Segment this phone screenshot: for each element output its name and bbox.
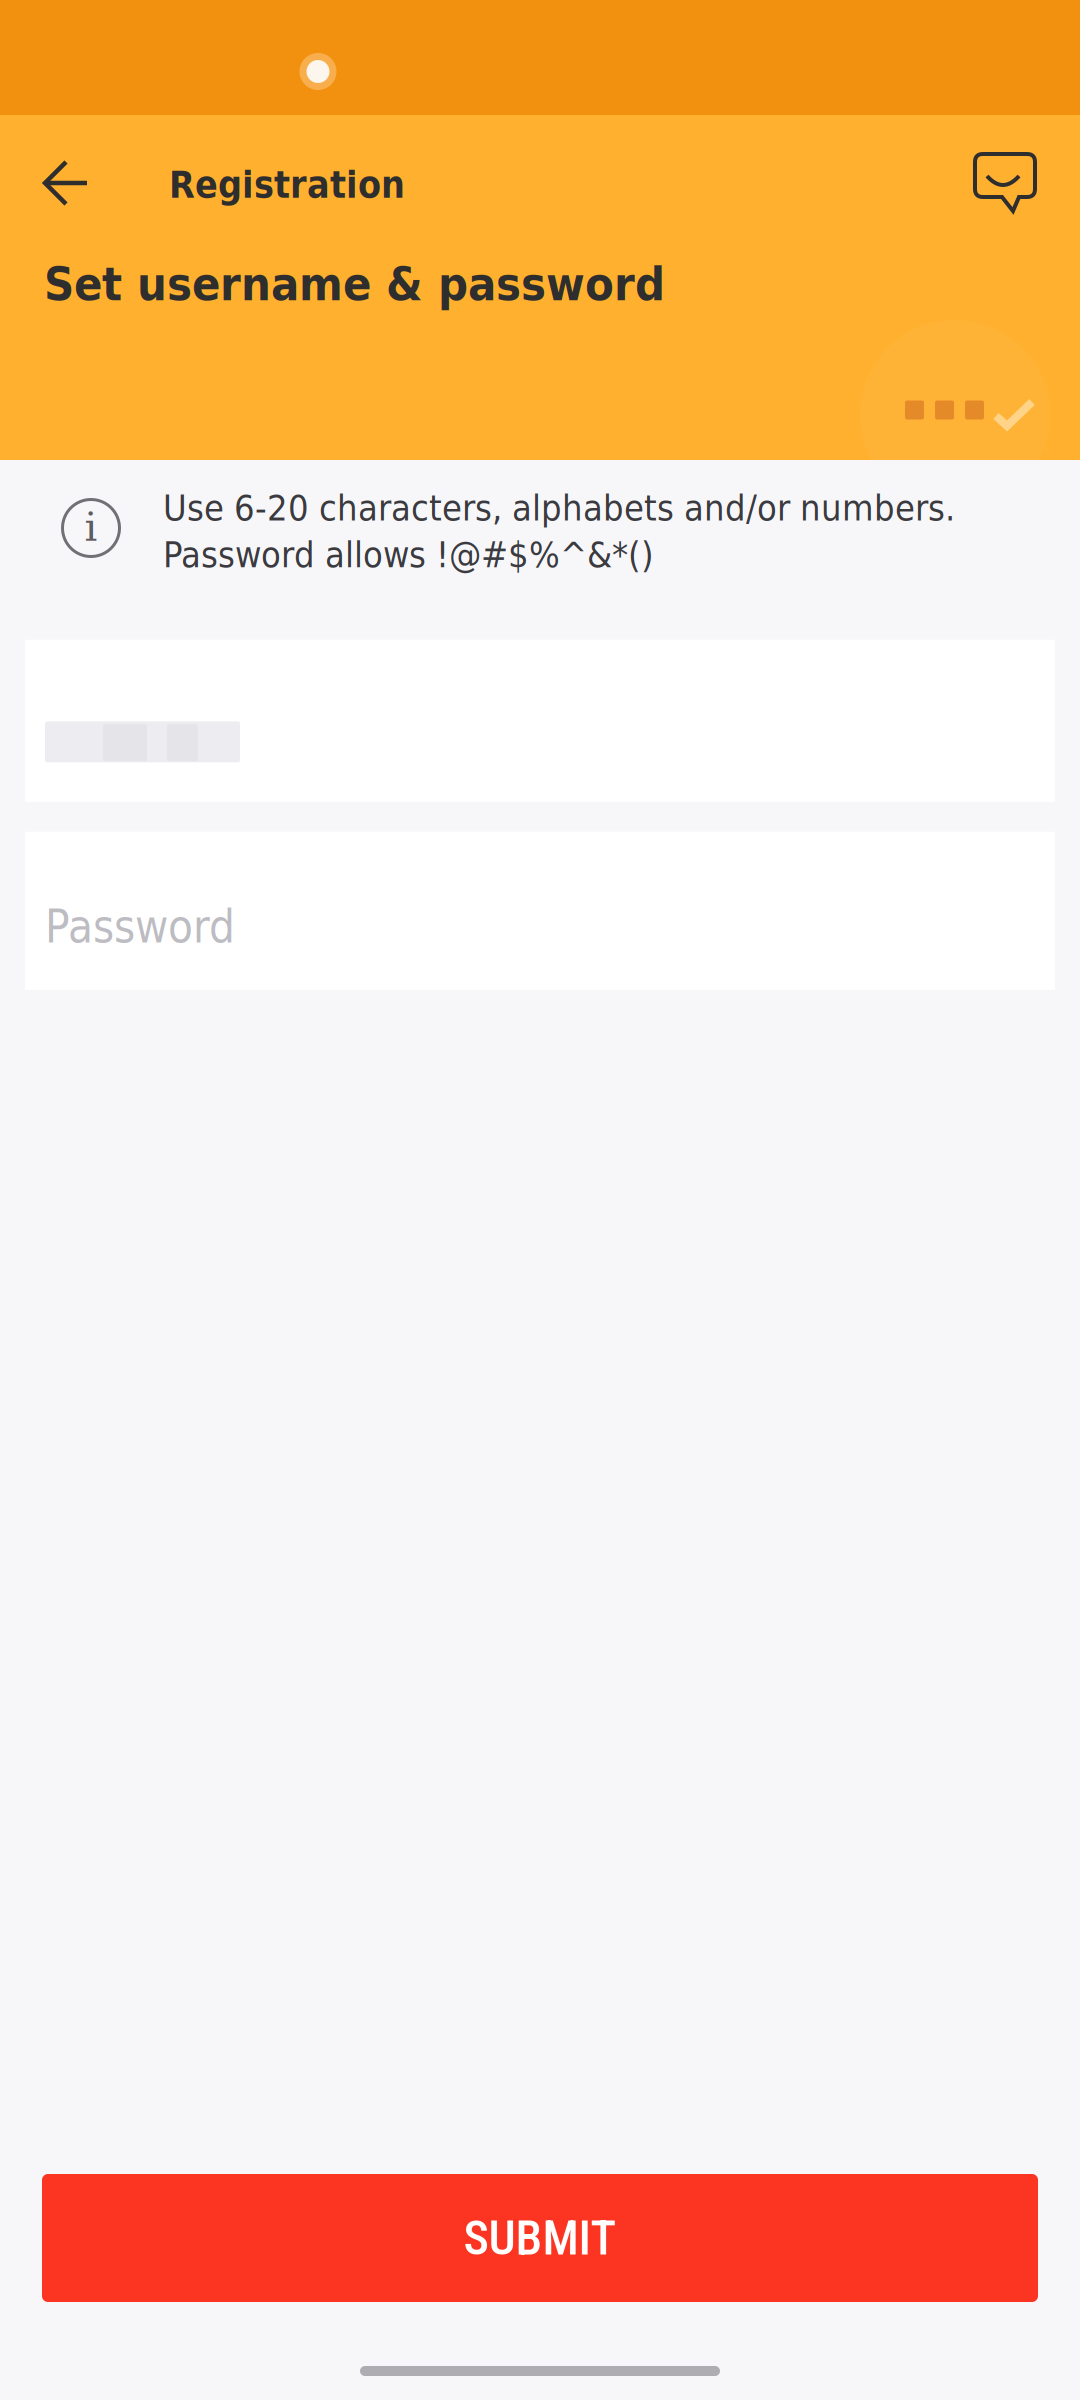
button[interactable]: Username bbox=[0, 640, 1080, 802]
staticText: Set username & password bbox=[44, 257, 665, 311]
staticText: Password allows !@#$%^&*() bbox=[163, 534, 654, 576]
staticText: Registration bbox=[169, 163, 405, 206]
staticText: Password bbox=[45, 900, 235, 953]
staticText: SUBMIT bbox=[463, 2210, 616, 2266]
staticText: i bbox=[84, 504, 97, 550]
button[interactable]: Support chat bbox=[950, 137, 1060, 229]
button[interactable]: SUBMIT bbox=[0, 2174, 1080, 2302]
button[interactable]: Password bbox=[0, 832, 1080, 990]
staticText: Use 6-20 characters, alphabets and/or nu… bbox=[163, 487, 955, 529]
button[interactable]: Back bbox=[11, 137, 121, 229]
